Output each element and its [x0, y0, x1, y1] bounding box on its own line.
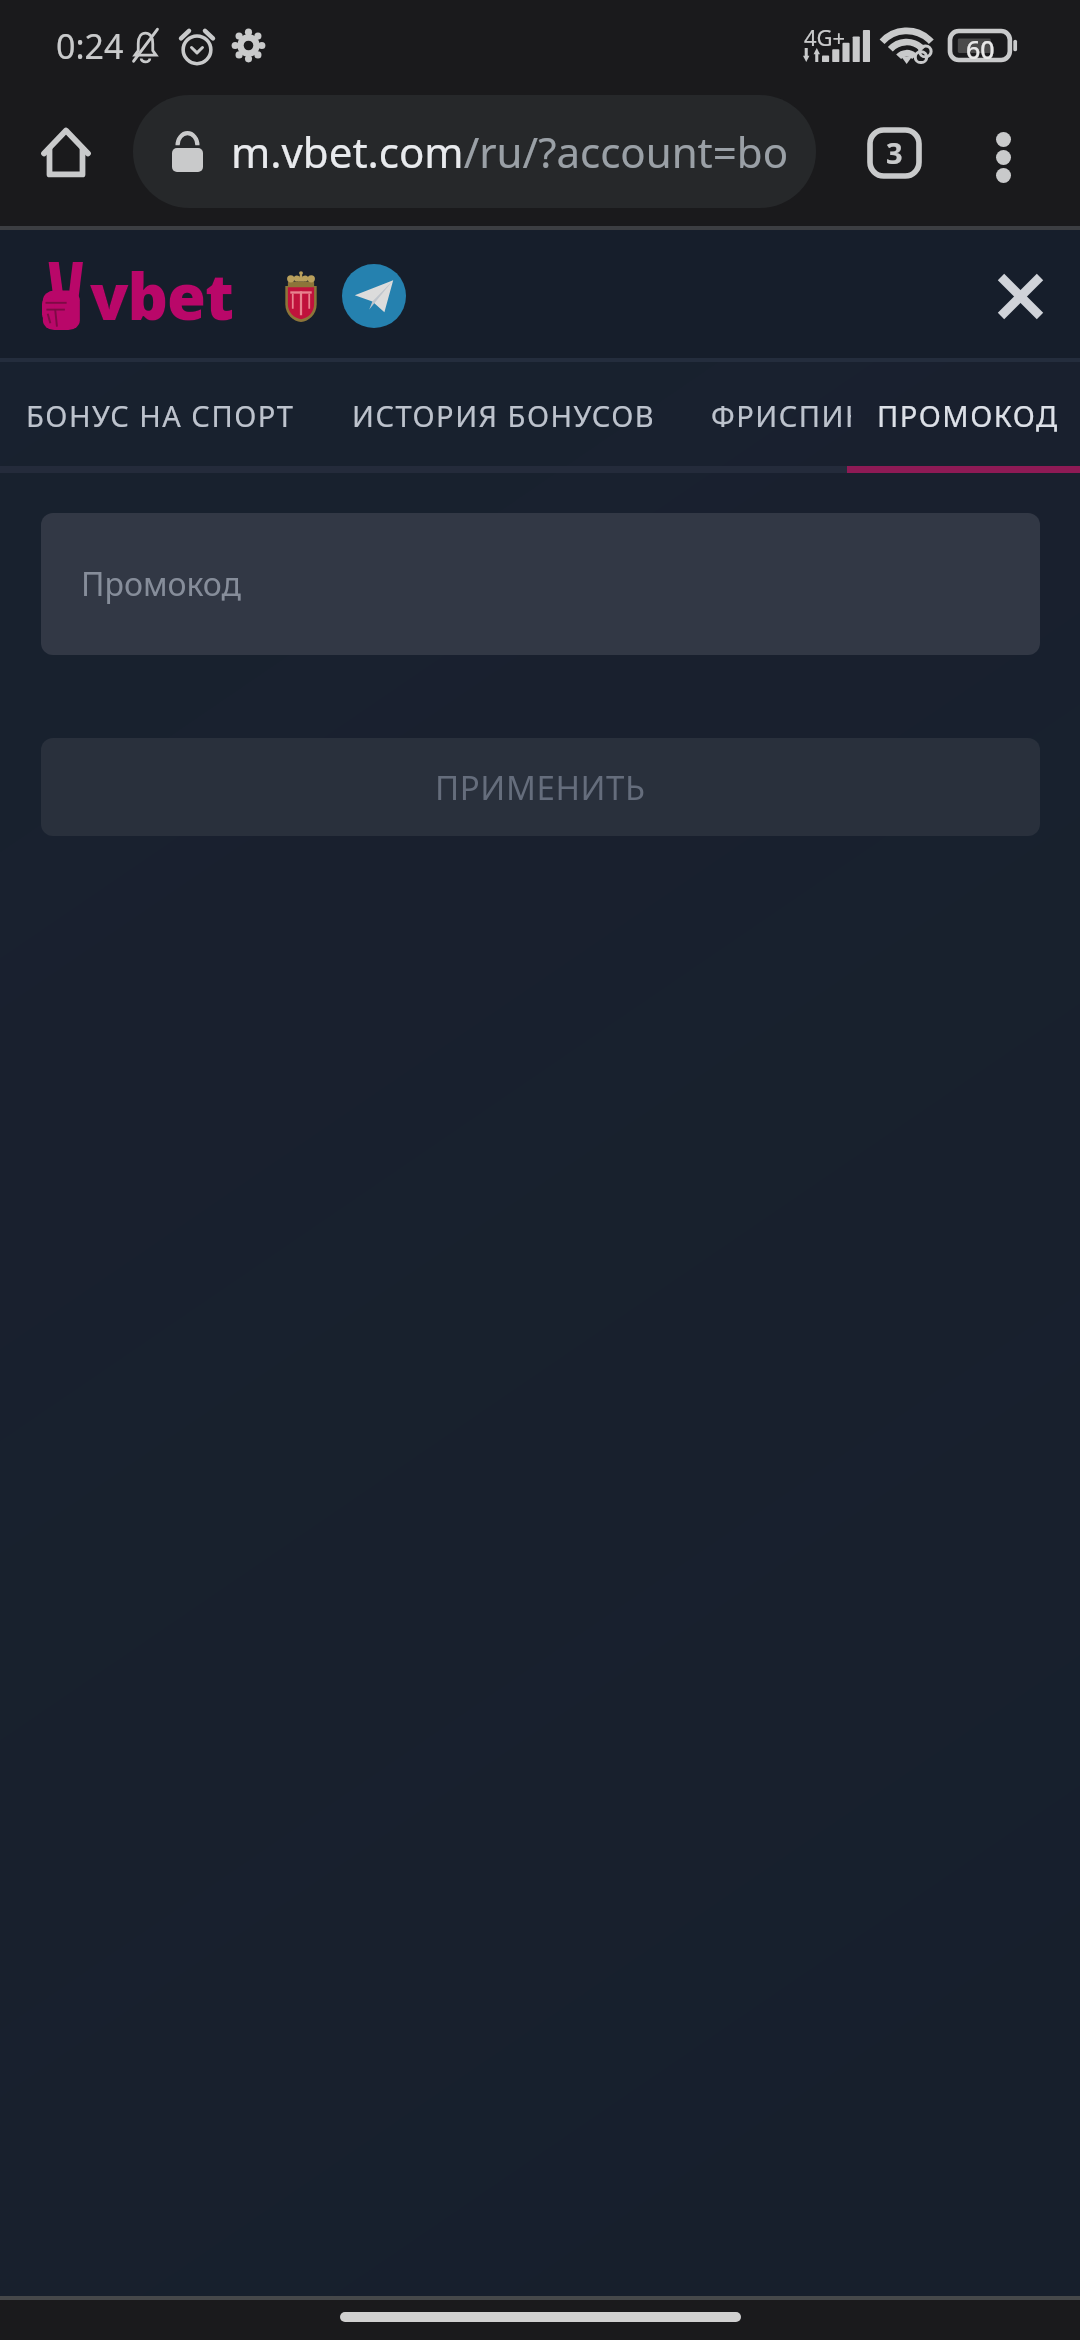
- staticText: 4G+: [804, 22, 846, 52]
- staticText: ФРИСПИНЫ: [711, 396, 851, 435]
- button[interactable]: Telegram: [342, 264, 406, 328]
- button[interactable]: Промокод: [41, 513, 1040, 655]
- button[interactable]: ПРИМЕНИТЬ: [41, 738, 1040, 836]
- staticText: 0:24: [56, 23, 124, 69]
- button[interactable]: ИСТОРИЯ БОНУСОВ: [322, 362, 682, 473]
- button[interactable]: AS Monaco: [285, 270, 317, 322]
- button[interactable]: Tabs, 3 open: [848, 107, 940, 199]
- button[interactable]: ПРОМОКОД: [847, 362, 1080, 473]
- button[interactable]: БОНУС НА СПОРТ: [0, 362, 326, 473]
- staticText: m.vbet.com/ru/?account=bo: [231, 123, 789, 180]
- staticText: ПРОМОКОД: [877, 396, 1059, 435]
- staticText: ПРИМЕНИТЬ: [435, 765, 646, 810]
- staticText: 3: [886, 133, 903, 172]
- button[interactable]: Home: [28, 114, 104, 190]
- button[interactable]: ФРИСПИНЫ: [681, 362, 851, 473]
- staticText: Промокод: [81, 562, 241, 606]
- button[interactable]: vbet: [42, 253, 233, 339]
- staticText: 60: [966, 32, 995, 66]
- staticText: БОНУС НА СПОРТ: [26, 396, 295, 435]
- staticText: vbet: [90, 253, 233, 339]
- staticText: ИСТОРИЯ БОНУСОВ: [352, 396, 656, 435]
- button[interactable]: More options: [957, 111, 1049, 203]
- button[interactable]: Close: [975, 251, 1065, 341]
- button[interactable]: m.vbet.com/ru/?account=bo: [133, 95, 816, 208]
